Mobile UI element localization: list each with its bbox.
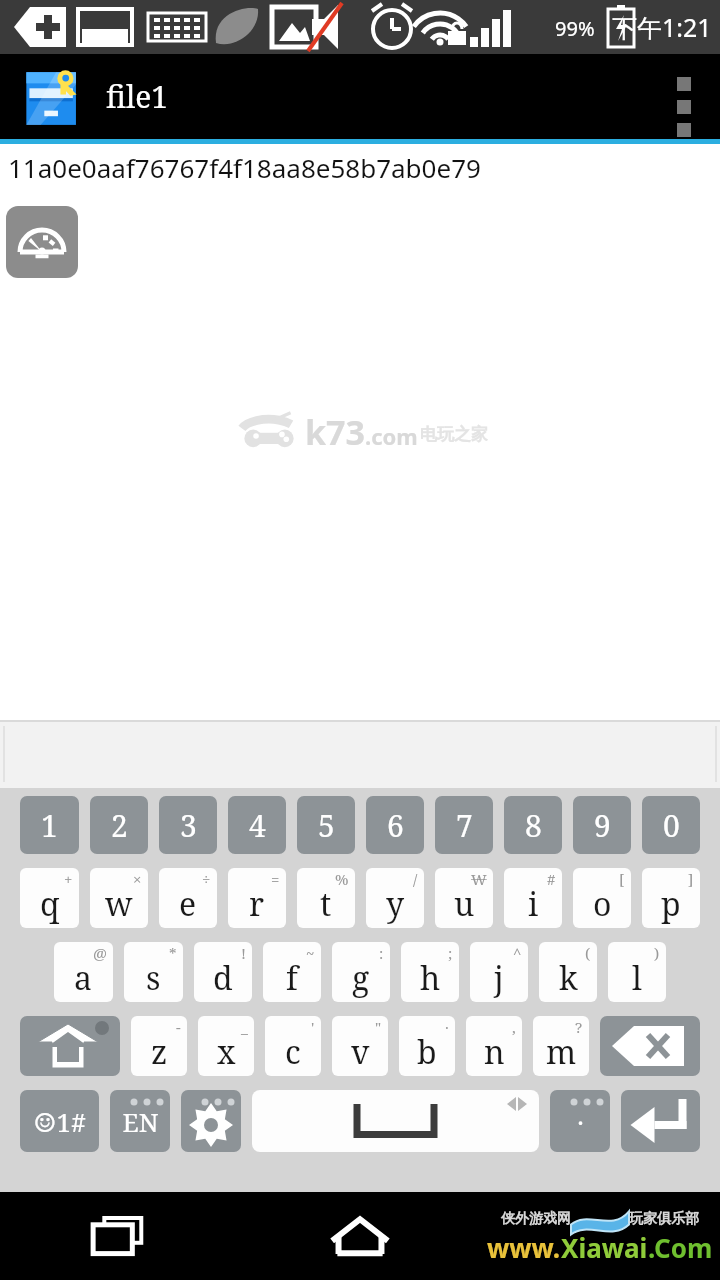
- staticText: 9: [594, 805, 611, 846]
- button[interactable]: ): [608, 942, 666, 1002]
- staticText: /: [413, 869, 418, 889]
- staticText: t: [320, 882, 332, 926]
- button[interactable]: (: [539, 942, 597, 1002]
- staticText: 侠外游戏网: [501, 1210, 571, 1228]
- button[interactable]: ~: [263, 942, 321, 1002]
- staticText: :: [379, 943, 384, 963]
- button[interactable]: 0: [642, 796, 700, 854]
- staticText: l: [632, 956, 642, 1000]
- button[interactable]: ·: [399, 1016, 455, 1076]
- staticText: r: [249, 882, 265, 926]
- staticText: EN: [122, 1104, 159, 1139]
- button[interactable]: Settings: [181, 1090, 241, 1152]
- staticText: d: [213, 956, 233, 1000]
- staticText: f: [286, 956, 298, 1000]
- button[interactable]: ": [332, 1016, 388, 1076]
- staticText: m: [546, 1030, 577, 1074]
- button[interactable]: Enter: [621, 1090, 700, 1152]
- button[interactable]: ÷: [159, 868, 217, 928]
- staticText: file1: [106, 76, 169, 117]
- staticText: b: [417, 1030, 437, 1074]
- staticText: [: [619, 869, 625, 889]
- staticText: z: [151, 1030, 168, 1074]
- button[interactable]: ·: [550, 1090, 610, 1152]
- button[interactable]: Backspace: [600, 1016, 700, 1076]
- button[interactable]: Recent apps: [0, 1192, 240, 1280]
- button[interactable]: :: [332, 942, 390, 1002]
- button[interactable]: ': [265, 1016, 321, 1076]
- button[interactable]: Benchmark app: [6, 206, 78, 278]
- button[interactable]: 5: [297, 796, 355, 854]
- button[interactable]: ^: [470, 942, 528, 1002]
- button[interactable]: Space: [252, 1090, 539, 1152]
- button[interactable]: 4: [228, 796, 286, 854]
- button[interactable]: 7: [435, 796, 493, 854]
- button[interactable]: #: [504, 868, 562, 928]
- staticText: .Com: [648, 1230, 713, 1265]
- button[interactable]: ×: [90, 868, 148, 928]
- button[interactable]: -: [131, 1016, 187, 1076]
- button[interactable]: 1: [20, 796, 79, 854]
- button[interactable]: !: [194, 942, 252, 1002]
- staticText: ☺1#: [33, 1104, 86, 1139]
- staticText: s: [146, 956, 161, 1000]
- button[interactable]: =: [228, 868, 286, 928]
- button[interactable]: More options: [648, 54, 720, 139]
- button[interactable]: ?: [533, 1016, 589, 1076]
- staticText: ': [311, 1017, 315, 1037]
- staticText: n: [484, 1030, 505, 1074]
- staticText: ?: [575, 1017, 583, 1037]
- staticText: ,: [512, 1017, 516, 1037]
- button[interactable]: *: [124, 942, 183, 1002]
- staticText: 7: [456, 805, 473, 846]
- button[interactable]: Shift: [20, 1016, 120, 1076]
- button[interactable]: 8: [504, 796, 562, 854]
- staticText: !: [241, 943, 246, 963]
- staticText: =: [271, 869, 280, 889]
- staticText: ": [375, 1017, 382, 1037]
- staticText: 2: [111, 805, 128, 846]
- staticText: 4: [249, 805, 266, 846]
- staticText: *: [169, 943, 177, 963]
- button[interactable]: ]: [642, 868, 700, 928]
- staticText: ₩: [471, 869, 487, 889]
- button[interactable]: [: [573, 868, 631, 928]
- staticText: -: [176, 1017, 181, 1037]
- staticText: y: [386, 882, 405, 926]
- button[interactable]: 2: [90, 796, 148, 854]
- staticText: p: [661, 882, 681, 926]
- button[interactable]: ☺1#: [20, 1090, 99, 1152]
- button[interactable]: EN: [110, 1090, 170, 1152]
- staticText: ·: [445, 1017, 449, 1037]
- button[interactable]: +: [20, 868, 79, 928]
- staticText: 99%: [555, 15, 595, 42]
- button[interactable]: /: [366, 868, 424, 928]
- button[interactable]: _: [198, 1016, 254, 1076]
- staticText: i: [528, 882, 539, 926]
- staticText: +: [64, 869, 73, 889]
- button[interactable]: 3: [159, 796, 217, 854]
- staticText: .com: [365, 421, 418, 451]
- button[interactable]: 9: [573, 796, 631, 854]
- button[interactable]: ,: [466, 1016, 522, 1076]
- staticText: @: [93, 943, 107, 963]
- staticText: w: [105, 882, 133, 926]
- button[interactable]: @: [54, 942, 113, 1002]
- button[interactable]: App icon: [22, 66, 84, 128]
- button[interactable]: ;: [401, 942, 459, 1002]
- staticText: ;: [448, 943, 453, 963]
- staticText: ^: [513, 943, 522, 963]
- staticText: ]: [688, 869, 694, 889]
- staticText: 电玩之家: [420, 424, 488, 445]
- staticText: 0: [663, 805, 680, 846]
- staticText: ·: [577, 1104, 584, 1139]
- staticText: g: [352, 956, 370, 1000]
- button[interactable]: 6: [366, 796, 424, 854]
- staticText: www.: [487, 1230, 561, 1265]
- button[interactable]: Home: [240, 1192, 480, 1280]
- staticText: 11a0e0aaf76767f4f18aa8e58b7ab0e79: [8, 150, 481, 185]
- button[interactable]: ₩: [435, 868, 493, 928]
- button[interactable]: Suggestions: [0, 720, 720, 788]
- button[interactable]: %: [297, 868, 355, 928]
- staticText: j: [494, 956, 504, 1000]
